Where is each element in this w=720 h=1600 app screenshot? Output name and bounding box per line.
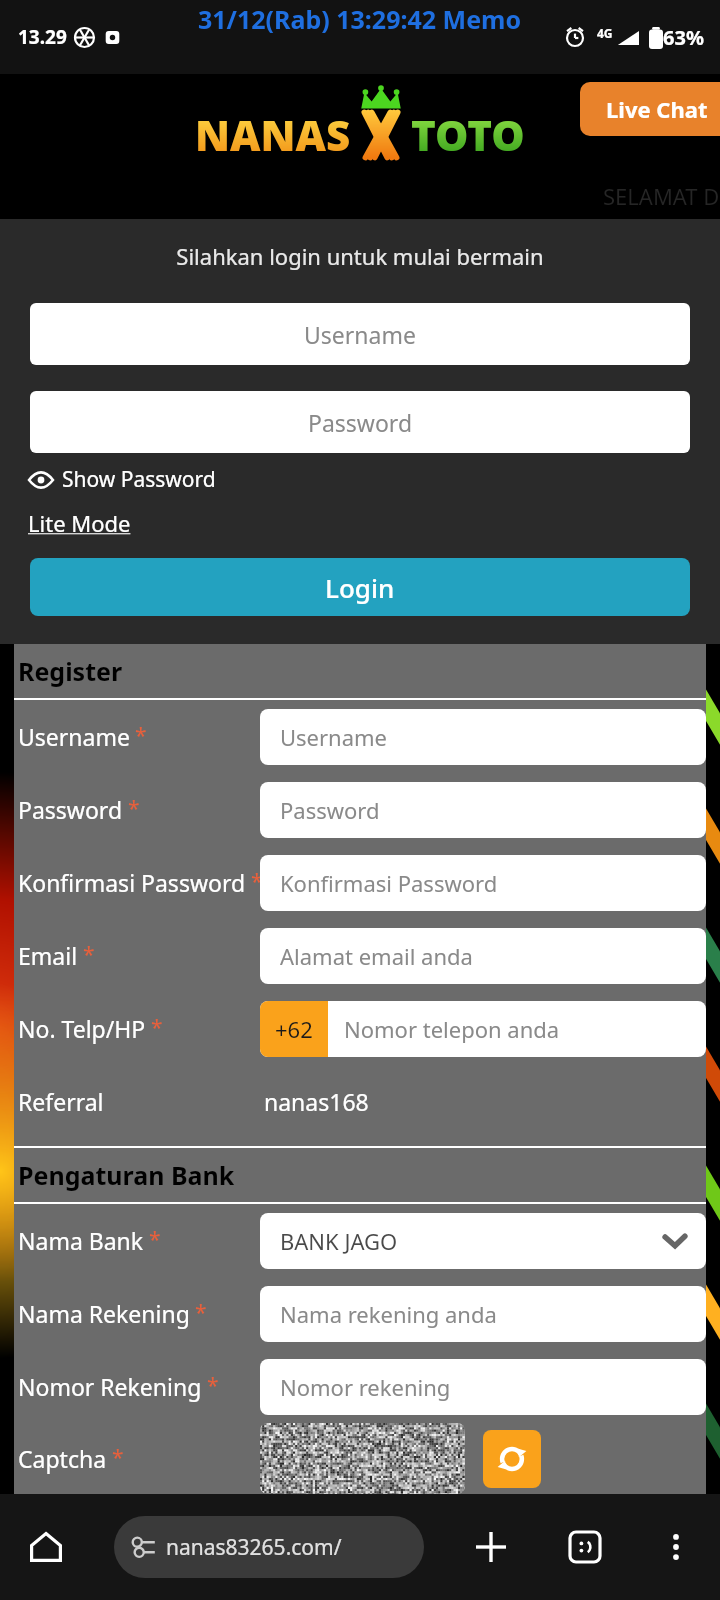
staticText: 13.29 <box>18 24 67 50</box>
button[interactable]: Lite Mode <box>28 508 131 538</box>
staticText: Referral <box>18 1086 104 1117</box>
staticText: * <box>251 867 260 896</box>
staticText: Password <box>18 794 123 825</box>
staticText: Show Password <box>62 465 216 494</box>
staticText: NANAS <box>195 106 351 163</box>
staticText: +62 <box>275 1014 313 1044</box>
staticText: Username <box>280 722 388 752</box>
staticText: Password <box>308 407 413 438</box>
staticText: BANK JAGO <box>280 1226 398 1256</box>
button[interactable]: Home <box>20 1521 72 1573</box>
staticText: No. Telp/HP <box>18 1013 146 1044</box>
staticText: Nomor Rekening <box>18 1371 202 1402</box>
other: Pilih bank <box>664 1230 686 1252</box>
staticText: Konfirmasi Password <box>18 867 246 898</box>
staticText: Nomor telepon anda <box>344 1014 560 1044</box>
staticText: nanas168 <box>264 1086 369 1117</box>
staticText: 63% <box>663 24 704 51</box>
staticText: Username <box>18 721 130 752</box>
button[interactable]: Login <box>30 558 690 616</box>
button[interactable]: +62 <box>260 1001 706 1057</box>
staticText: 4G <box>597 25 613 41</box>
staticText: * <box>112 1443 124 1472</box>
staticText: Nama Rekening <box>18 1298 190 1329</box>
staticText: Register <box>18 654 123 688</box>
staticText: * <box>149 1225 161 1254</box>
staticText: Password <box>280 795 380 825</box>
staticText: Konfirmasi Password <box>280 868 498 898</box>
button[interactable]: Alamat email anda <box>260 928 706 984</box>
button[interactable]: Nama rekening anda <box>260 1286 706 1342</box>
staticText: Login <box>325 570 395 605</box>
button[interactable]: Tabs <box>559 1521 611 1573</box>
staticText: * <box>207 1371 219 1400</box>
button[interactable]: BANK JAGO <box>260 1213 706 1269</box>
button[interactable]: More options <box>652 1523 700 1571</box>
staticText: Silahkan login untuk mulai bermain <box>0 241 720 271</box>
button[interactable]: nanas83265.com/register?referral <box>114 1516 424 1578</box>
staticText: Nomor rekening <box>280 1372 451 1402</box>
staticText: Alamat email anda <box>280 941 473 971</box>
button[interactable]: Password <box>260 782 706 838</box>
staticText: Nama Bank <box>18 1225 144 1256</box>
staticText: Pengaturan Bank <box>18 1158 235 1192</box>
button[interactable]: New tab <box>465 1521 517 1573</box>
staticText: Live Chat <box>606 94 708 124</box>
staticText: Email <box>18 940 78 971</box>
staticText: SELAMAT D <box>603 181 720 211</box>
staticText: TOTO <box>411 106 525 163</box>
button[interactable] <box>260 1423 465 1494</box>
button[interactable]: Refresh captcha <box>483 1430 541 1488</box>
staticText: * <box>195 1298 207 1327</box>
staticText: Lite Mode <box>28 508 131 538</box>
staticText: nanas83265.com/register?referral <box>166 1533 424 1562</box>
staticText: Username <box>304 319 416 350</box>
button[interactable]: Live Chat <box>580 82 720 136</box>
staticText: * <box>128 794 140 823</box>
staticText: Nama rekening anda <box>280 1299 497 1329</box>
button[interactable]: Password <box>30 391 690 453</box>
button[interactable]: Show Password <box>28 465 216 494</box>
staticText: Captcha <box>18 1443 107 1474</box>
button[interactable]: Username <box>260 709 706 765</box>
staticText: 31/12(Rab) 13:29:42 Memo <box>198 2 522 36</box>
staticText: * <box>135 721 147 750</box>
button[interactable]: Nomor rekening <box>260 1359 706 1415</box>
staticText: * <box>83 940 95 969</box>
button[interactable]: Username <box>30 303 690 365</box>
button[interactable]: Konfirmasi Password <box>260 855 706 911</box>
staticText: * <box>151 1013 163 1042</box>
